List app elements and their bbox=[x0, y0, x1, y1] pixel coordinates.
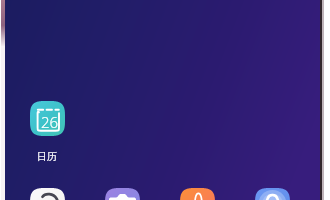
button[interactable]: Gallery bbox=[180, 188, 215, 200]
staticText: 26 bbox=[41, 112, 59, 132]
button[interactable]: Camera bbox=[105, 188, 140, 200]
staticText: 日历 bbox=[37, 150, 57, 163]
button[interactable]: Apps bbox=[255, 188, 290, 200]
button[interactable]: Phone bbox=[30, 188, 65, 200]
button[interactable]: 26 bbox=[20, 101, 74, 163]
